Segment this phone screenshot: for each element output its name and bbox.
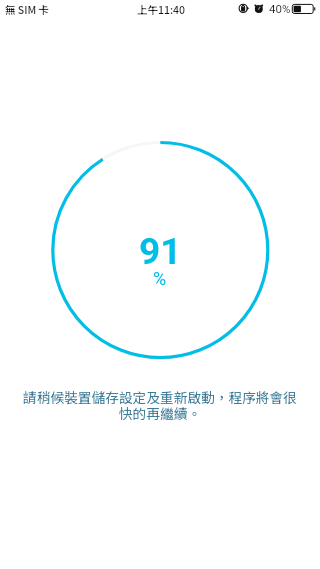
staticText: 40% <box>269 2 291 15</box>
other: Battery 40 percent <box>292 4 318 14</box>
other: Progress 91 percent <box>0 0 320 569</box>
staticText: 請稍候裝置儲存設定及重新啟動，程序將會很快的再繼續。 <box>18 387 302 423</box>
other: Alarm set <box>253 3 265 15</box>
staticText: 91 <box>139 230 182 273</box>
staticText: 上午11:40 <box>137 2 186 17</box>
staticText: 無 SIM 卡 <box>5 2 50 17</box>
staticText: % <box>153 268 167 289</box>
other: Location services in use <box>238 3 250 15</box>
